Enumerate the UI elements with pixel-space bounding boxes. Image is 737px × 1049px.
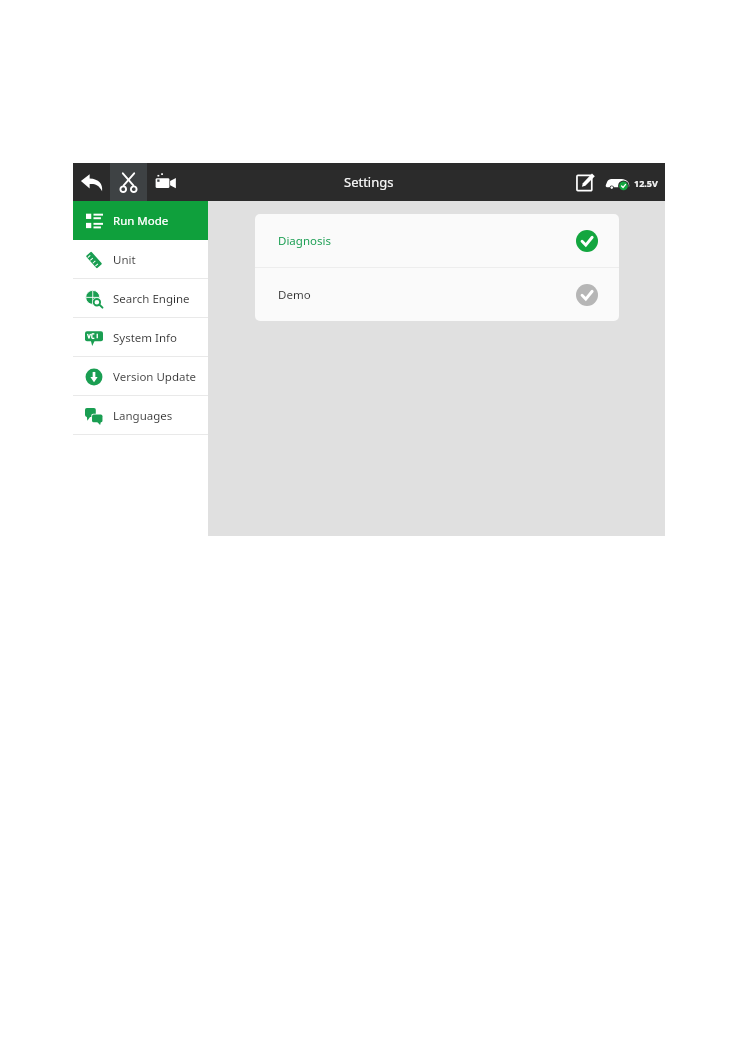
button[interactable]: Vehicle voltage [605,175,658,190]
button[interactable]: Screenshot [110,163,147,201]
button[interactable]: Search Engine [73,279,208,318]
staticText: Demo [278,287,311,303]
button[interactable]: Demo [255,268,619,321]
button[interactable]: Edit [568,163,602,201]
button[interactable]: Record video [147,163,184,201]
button[interactable]: Unit [73,240,208,279]
button[interactable]: System Info [73,318,208,357]
button[interactable]: Back [73,163,110,201]
staticText: Search Engine [113,291,190,307]
staticText: Run Mode [113,213,169,229]
staticText: Settings [344,173,394,191]
staticText: 12.5V [634,177,658,189]
staticText: Unit [113,252,136,268]
button[interactable]: Run Mode [73,201,208,240]
staticText: System Info [113,330,177,346]
staticText: Diagnosis [278,233,331,249]
button[interactable]: Version Update [73,357,208,396]
staticText: Languages [113,408,173,424]
button[interactable]: Languages [73,396,208,435]
button[interactable]: Diagnosis [255,214,619,267]
staticText: Version Update [113,369,197,385]
